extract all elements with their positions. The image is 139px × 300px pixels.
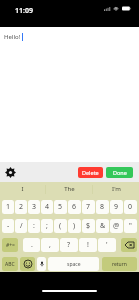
button[interactable]: , bbox=[41, 238, 59, 252]
staticText: 9 bbox=[114, 202, 119, 212]
button[interactable]: #+= bbox=[2, 238, 18, 252]
button[interactable]: 6 bbox=[68, 200, 81, 214]
staticText: 11:09 bbox=[15, 6, 33, 16]
staticText: ) bbox=[73, 221, 76, 231]
staticText: ! bbox=[87, 240, 89, 250]
button[interactable]: : bbox=[28, 219, 40, 233]
button[interactable]: Emoji bbox=[20, 257, 35, 271]
button[interactable]: $ bbox=[82, 219, 95, 233]
button[interactable]: ! bbox=[79, 238, 97, 252]
staticText: : bbox=[33, 221, 35, 231]
staticText: 2 bbox=[19, 202, 24, 212]
staticText: - bbox=[7, 221, 10, 231]
button[interactable]: / bbox=[15, 219, 27, 233]
staticText: 7 bbox=[86, 202, 91, 212]
button[interactable]: 0 bbox=[124, 200, 137, 214]
button[interactable]: 2 bbox=[15, 200, 27, 214]
staticText: #+= bbox=[6, 242, 15, 249]
staticText: 0 bbox=[128, 202, 133, 212]
button[interactable]: - bbox=[2, 219, 14, 233]
button[interactable]: 7 bbox=[82, 200, 95, 214]
button[interactable]: 5 bbox=[54, 200, 67, 214]
staticText: $ bbox=[86, 221, 91, 231]
staticText: I'm bbox=[112, 185, 121, 193]
staticText: 4 bbox=[45, 202, 50, 212]
button[interactable]: 1 bbox=[2, 200, 14, 214]
button[interactable]: space bbox=[48, 257, 99, 271]
staticText: / bbox=[20, 221, 23, 231]
staticText: @ bbox=[113, 221, 120, 231]
button[interactable]: Settings bbox=[1, 163, 19, 181]
button[interactable]: @ bbox=[110, 219, 123, 233]
button[interactable]: & bbox=[96, 219, 109, 233]
button[interactable]: I bbox=[0, 182, 45, 196]
button[interactable]: 4 bbox=[41, 200, 53, 214]
button[interactable]: ? bbox=[60, 238, 78, 252]
staticText: ABC bbox=[5, 261, 15, 268]
button[interactable]: Delete bbox=[78, 167, 103, 178]
button[interactable]: ( bbox=[54, 219, 67, 233]
staticText: . bbox=[31, 240, 33, 250]
staticText: Done bbox=[113, 169, 127, 176]
staticText: Delete bbox=[82, 169, 99, 176]
staticText: I bbox=[21, 185, 24, 193]
button[interactable]: " bbox=[124, 219, 137, 233]
button[interactable]: 9 bbox=[110, 200, 123, 214]
button[interactable]: Backspace bbox=[121, 238, 137, 252]
staticText: space bbox=[67, 261, 81, 268]
staticText: , bbox=[49, 240, 51, 250]
staticText: 6 bbox=[72, 202, 77, 212]
button[interactable]: ABC bbox=[2, 257, 18, 271]
button[interactable]: ' bbox=[98, 238, 116, 252]
staticText: ( bbox=[59, 221, 62, 231]
button[interactable]: The bbox=[46, 182, 92, 196]
staticText: 1 bbox=[6, 202, 11, 212]
button[interactable]: 3 bbox=[28, 200, 40, 214]
staticText: ; bbox=[46, 221, 48, 231]
staticText: return bbox=[112, 261, 127, 268]
button[interactable]: ; bbox=[41, 219, 53, 233]
staticText: & bbox=[100, 221, 106, 231]
button[interactable]: Dictation bbox=[37, 257, 46, 271]
staticText: 3 bbox=[32, 202, 37, 212]
staticText: The bbox=[64, 185, 75, 193]
button[interactable]: return bbox=[102, 257, 137, 271]
staticText: ? bbox=[67, 240, 71, 250]
staticText: 8 bbox=[100, 202, 105, 212]
button[interactable]: 8 bbox=[96, 200, 109, 214]
button[interactable]: Done bbox=[106, 167, 133, 178]
button[interactable]: . bbox=[23, 238, 40, 252]
staticText: ' bbox=[106, 240, 108, 250]
staticText: " bbox=[129, 221, 132, 231]
staticText: Hello! bbox=[4, 33, 21, 41]
staticText: 5 bbox=[58, 202, 63, 212]
button[interactable]: I'm bbox=[93, 182, 139, 196]
button[interactable]: ) bbox=[68, 219, 81, 233]
